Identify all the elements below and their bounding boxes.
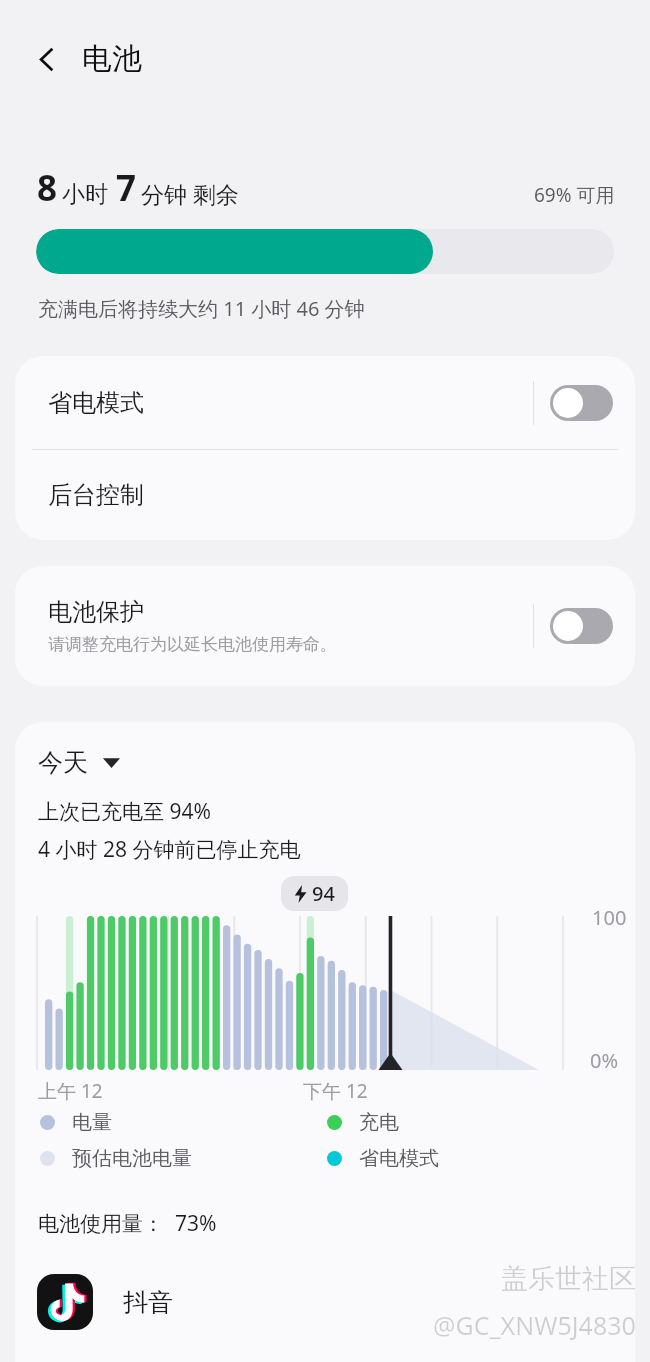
staticText: 充电 xyxy=(359,1110,399,1135)
staticText: 充满电后将持续大约 11 小时 46 分钟 xyxy=(38,295,365,322)
staticText: 盖乐世社区 xyxy=(501,1262,636,1296)
staticText: 上午 12 xyxy=(38,1078,103,1104)
staticText: 抖音 xyxy=(123,1287,173,1318)
button[interactable]: Power saving toggle xyxy=(550,385,613,421)
staticText: 今天 xyxy=(38,747,88,778)
button[interactable]: 省电模式 xyxy=(15,356,635,449)
staticText: 省电模式 xyxy=(48,388,533,418)
staticText: 电池使用量： 73% xyxy=(38,1209,217,1238)
staticText: 下午 12 xyxy=(303,1078,368,1104)
button[interactable]: 抖音 xyxy=(15,1262,635,1342)
button[interactable]: 后台控制 xyxy=(15,450,635,540)
staticText: @GC_XNW5J4830 xyxy=(433,1308,636,1342)
staticText: 预估电池电量 xyxy=(72,1146,192,1171)
button[interactable]: 电池保护 xyxy=(15,566,635,686)
staticText: 请调整充电行为以延长电池使用寿命。 xyxy=(48,634,337,655)
staticText: 小时 xyxy=(62,180,108,209)
staticText: 0% xyxy=(590,1047,619,1074)
staticText: 电池保护 xyxy=(48,597,144,627)
staticText: 分钟 剩余 xyxy=(141,178,239,209)
staticText: 后台控制 xyxy=(48,480,144,510)
staticText: 上次已充电至 94% xyxy=(38,797,211,826)
staticText: 电池 xyxy=(82,40,142,78)
staticText: 省电模式 xyxy=(359,1146,439,1171)
staticText: 100 xyxy=(592,904,627,931)
button[interactable]: Back xyxy=(20,33,72,85)
staticText: 4 小时 28 分钟前已停止充电 xyxy=(38,835,301,864)
button[interactable]: Battery protection toggle xyxy=(550,608,613,644)
staticText: 8 xyxy=(37,164,58,212)
staticText: 69% 可用 xyxy=(534,182,615,208)
staticText: 电量 xyxy=(72,1110,112,1135)
staticText: 94 xyxy=(312,880,335,907)
button[interactable]: 今天 xyxy=(31,742,127,783)
staticText: 7 xyxy=(116,164,137,212)
